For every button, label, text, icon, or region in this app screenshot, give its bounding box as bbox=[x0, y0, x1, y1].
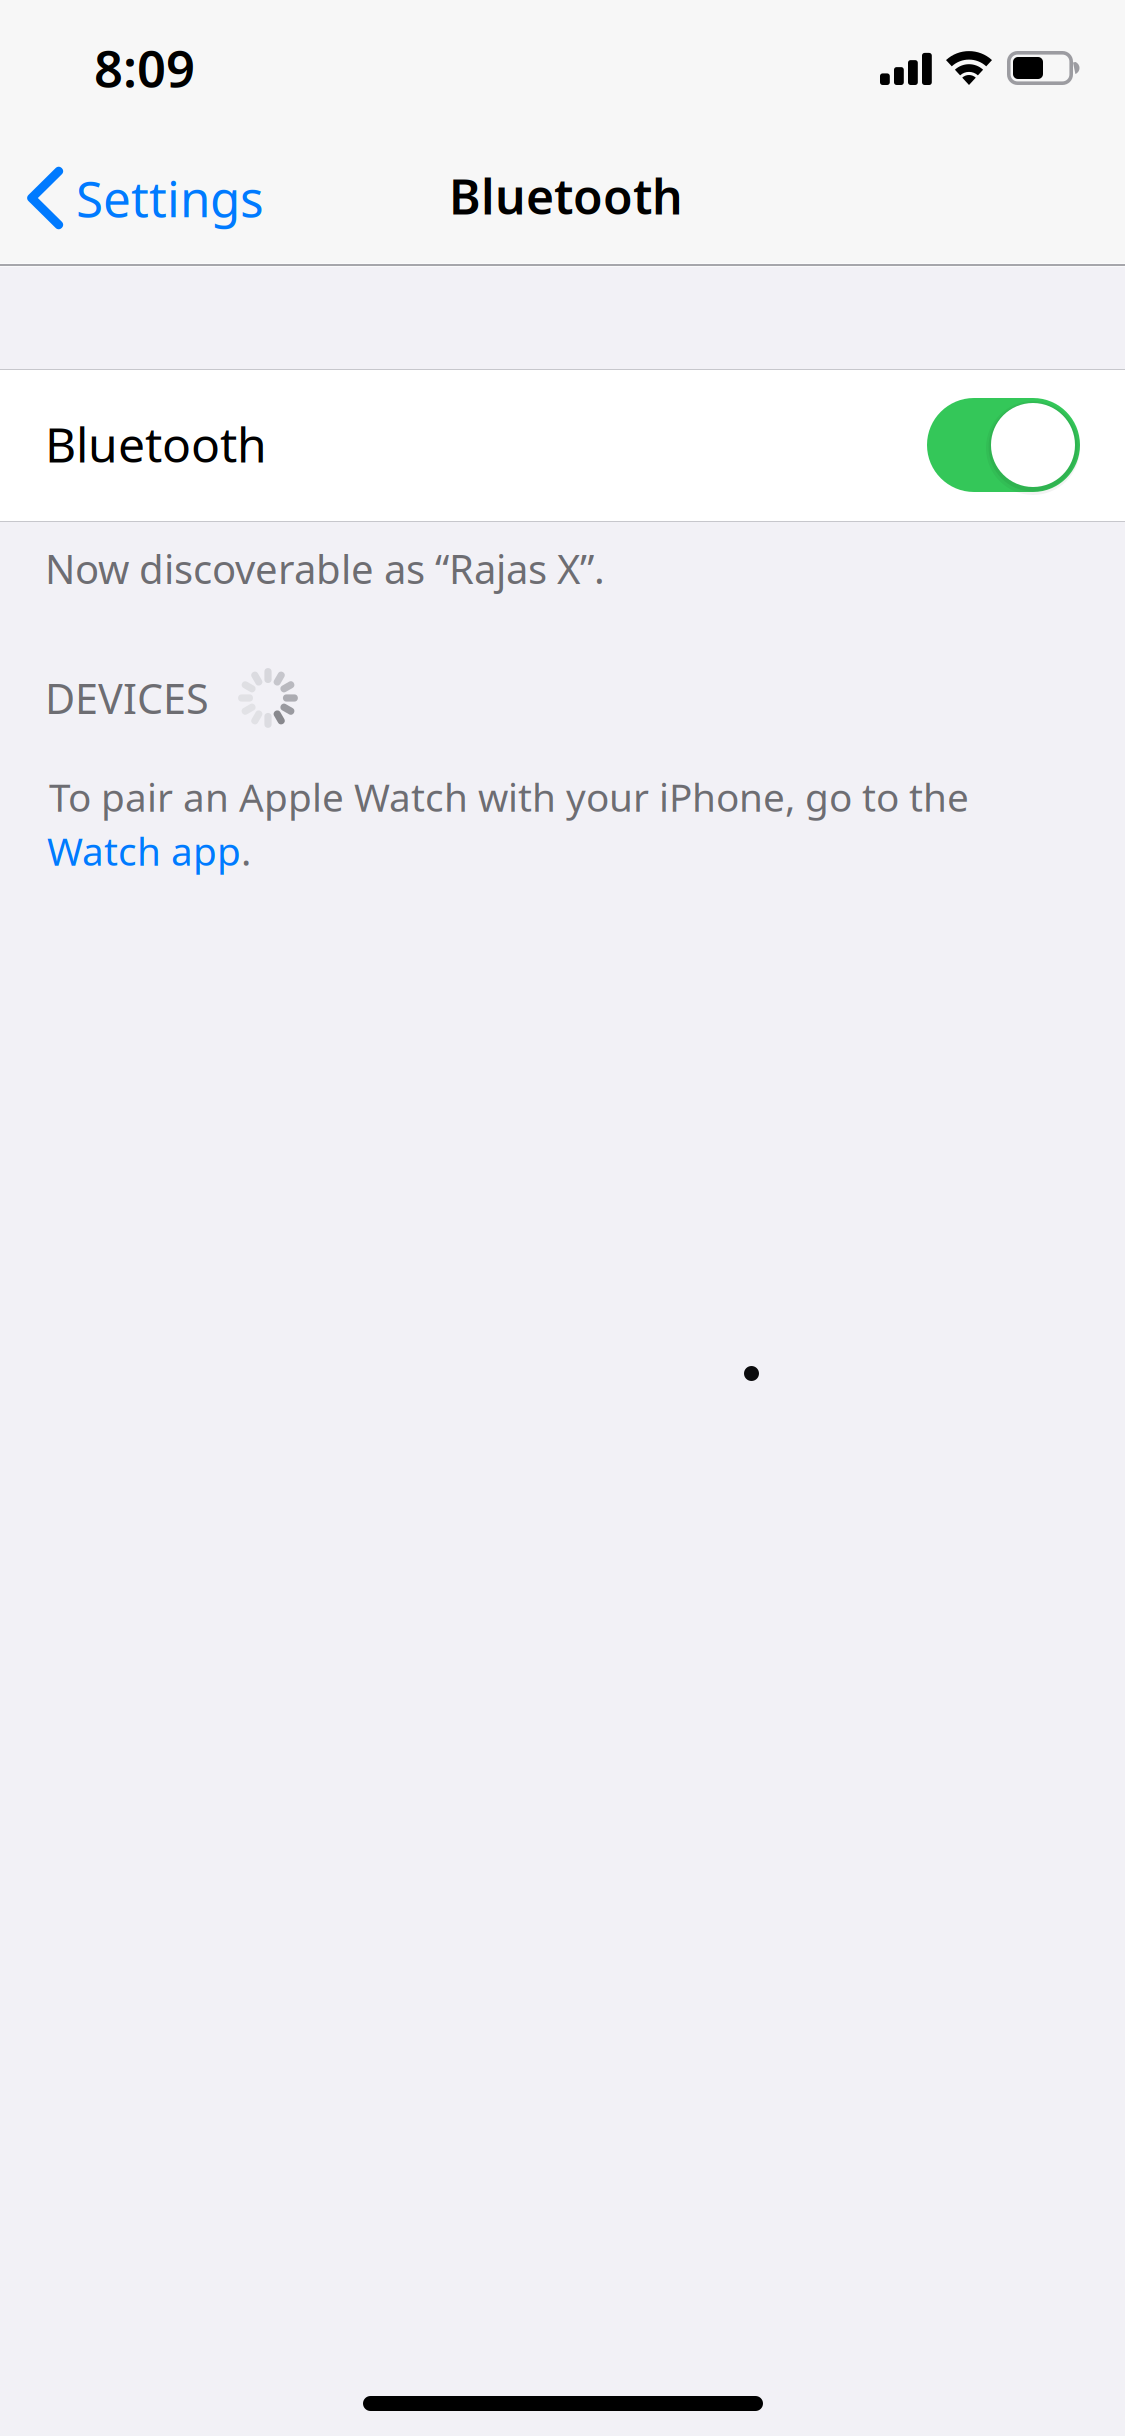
button[interactable]: Watch app bbox=[47, 825, 241, 876]
staticText: To pair an Apple Watch with your iPhone,… bbox=[49, 771, 969, 822]
staticText: Watch app bbox=[47, 825, 241, 876]
button[interactable]: Bluetooth bbox=[0, 369, 1125, 522]
staticText: . bbox=[241, 825, 251, 876]
staticText: Bluetooth bbox=[449, 164, 683, 228]
button[interactable]: Settings bbox=[0, 144, 288, 252]
staticText: 8:09 bbox=[94, 34, 195, 101]
staticText: Bluetooth bbox=[45, 412, 267, 476]
button[interactable]: Bluetooth, on bbox=[927, 398, 1080, 492]
staticText: DEVICES bbox=[45, 671, 209, 725]
staticText: Settings bbox=[76, 165, 264, 231]
staticText: Now discoverable as “Rajas X”. bbox=[45, 542, 605, 595]
